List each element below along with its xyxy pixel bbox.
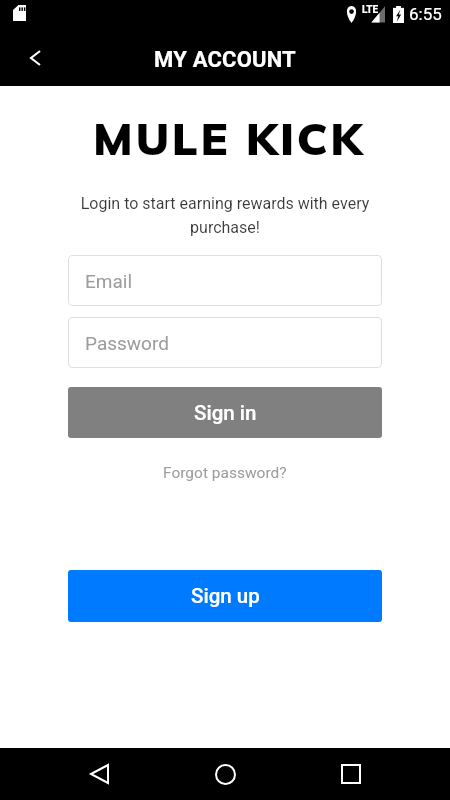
staticText: Login to start earning rewards with ever… bbox=[75, 194, 375, 237]
button[interactable]: Forgot password? bbox=[155, 460, 295, 486]
staticText: Forgot password? bbox=[163, 464, 287, 482]
staticText: 6:55 bbox=[409, 4, 442, 24]
staticText: MULE KICK bbox=[93, 110, 365, 166]
button[interactable]: Home bbox=[201, 750, 249, 798]
button[interactable]: Back bbox=[11, 34, 59, 82]
staticText: Password bbox=[85, 332, 169, 354]
button[interactable]: Back bbox=[77, 750, 125, 798]
staticText: Sign in bbox=[194, 401, 257, 425]
button[interactable]: Password bbox=[68, 317, 382, 368]
staticText: Email bbox=[85, 270, 133, 292]
staticText: Sign up bbox=[191, 584, 260, 608]
staticText: LTE bbox=[362, 4, 379, 16]
button[interactable]: Sign up bbox=[68, 570, 382, 622]
button[interactable]: Sign in bbox=[68, 387, 382, 438]
staticText: MY ACCOUNT bbox=[154, 47, 296, 73]
button[interactable]: Email bbox=[68, 255, 382, 306]
button[interactable]: Recent apps bbox=[326, 750, 374, 798]
